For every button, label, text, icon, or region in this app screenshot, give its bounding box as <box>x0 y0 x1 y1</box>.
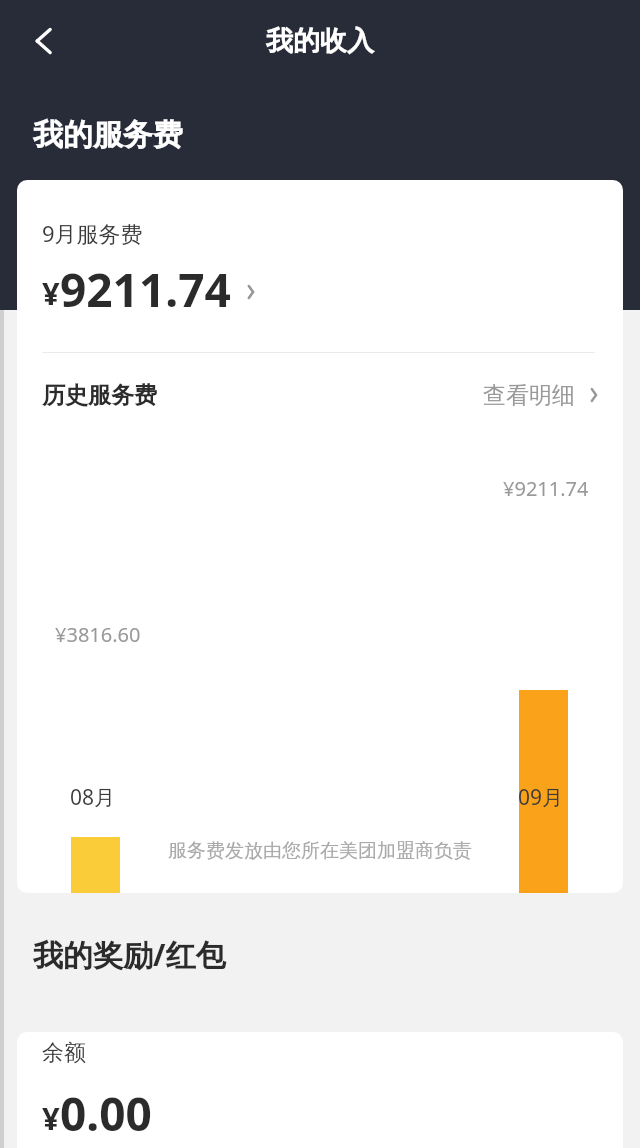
staticText: 我的奖励/红包 <box>33 934 226 975</box>
staticText: 我的服务费 <box>33 116 183 154</box>
button[interactable]: 历史服务费 <box>17 366 623 424</box>
staticText: ¥ <box>42 272 60 314</box>
staticText: 09月 <box>518 783 564 812</box>
staticText: 9月服务费 <box>42 218 143 248</box>
staticText: ¥ <box>42 1097 60 1139</box>
staticText: 08月 <box>70 783 116 812</box>
staticText: 我的收入 <box>266 24 374 58</box>
staticText: 9211.74 <box>60 258 231 320</box>
staticText: 历史服务费 <box>42 381 157 410</box>
staticText: 服务费发放由您所在美团加盟商负责 <box>17 839 623 863</box>
staticText: 余额 <box>42 1039 86 1067</box>
staticText: ¥3816.60 <box>55 621 141 648</box>
button[interactable]: Back <box>16 13 72 69</box>
staticText: 查看明细 <box>483 381 575 410</box>
staticText: 0.00 <box>60 1082 152 1145</box>
button[interactable]: ¥ <box>35 258 335 320</box>
staticText: ¥9211.74 <box>503 475 589 502</box>
